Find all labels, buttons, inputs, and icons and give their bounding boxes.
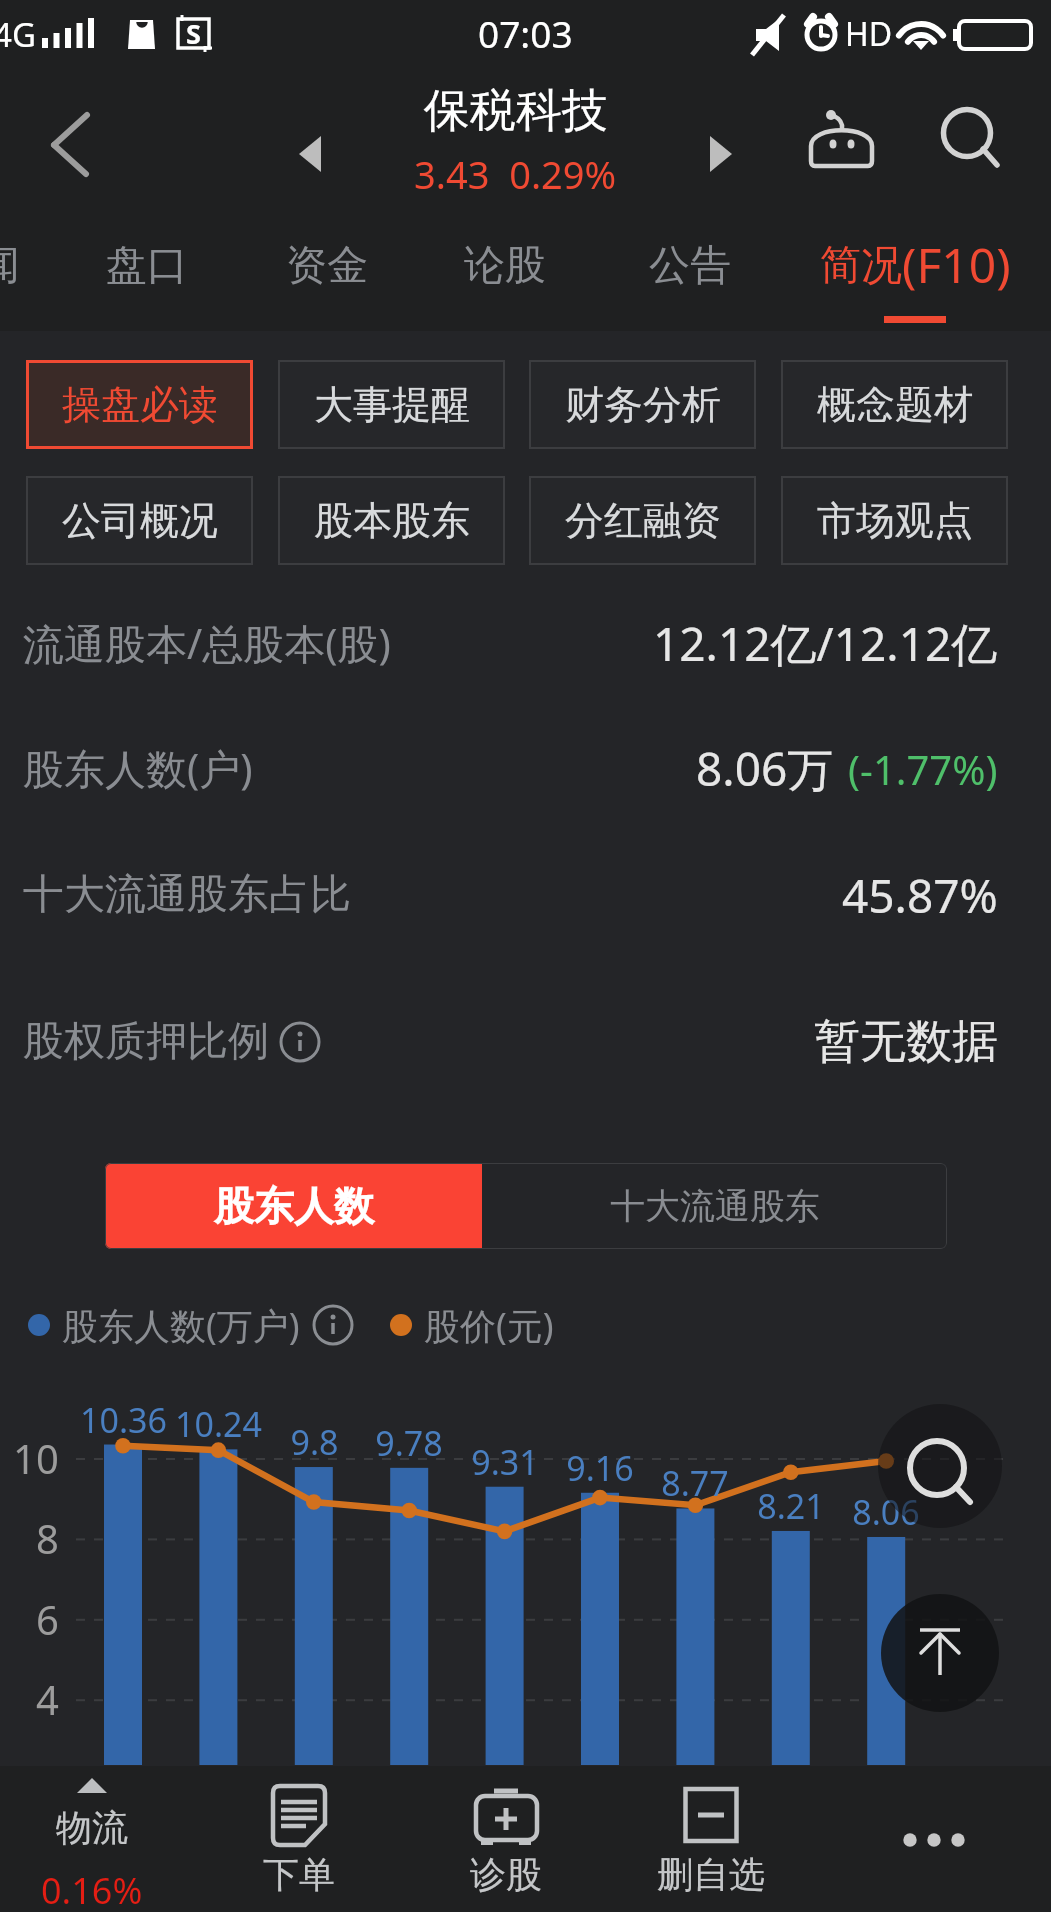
staticText: 股本股东 bbox=[314, 496, 470, 545]
staticText: 8.06 bbox=[852, 1489, 920, 1535]
staticText: 股东人数(万户) bbox=[62, 1301, 300, 1350]
button[interactable]: Next bbox=[681, 99, 761, 179]
button[interactable]: 分红融资 bbox=[529, 476, 756, 565]
button[interactable]: Search bbox=[910, 83, 1022, 195]
staticText: 操盘必读 bbox=[62, 380, 218, 429]
button[interactable]: 诊股 bbox=[426, 1766, 586, 1912]
button[interactable]: 物流 bbox=[16, 1766, 168, 1912]
staticText: 股东人数(户) bbox=[23, 740, 253, 796]
button[interactable]: More bbox=[874, 1766, 994, 1912]
staticText: 简况 bbox=[820, 240, 902, 292]
button[interactable]: 资金 bbox=[262, 208, 392, 331]
button[interactable]: 大事提醒 bbox=[278, 360, 505, 449]
staticText: 公司概况 bbox=[62, 496, 218, 545]
staticText: 6 bbox=[36, 1592, 59, 1646]
staticText: 论股 bbox=[464, 240, 546, 292]
button[interactable]: 市场观点 bbox=[781, 476, 1008, 565]
staticText: 物流 bbox=[56, 1805, 128, 1850]
staticText: 大事提醒 bbox=[314, 380, 470, 429]
staticText: 市场观点 bbox=[817, 496, 973, 545]
button[interactable]: 财务分析 bbox=[529, 360, 756, 449]
staticText: 8.06万 bbox=[696, 737, 834, 800]
staticText: 财务分析 bbox=[565, 380, 721, 429]
staticText: 8.77 bbox=[661, 1460, 729, 1506]
staticText: 9.31 bbox=[471, 1439, 539, 1485]
staticText: 股东人数 bbox=[214, 1181, 374, 1231]
staticText: 10.24 bbox=[175, 1401, 262, 1447]
staticText: (-1.77%) bbox=[848, 742, 998, 796]
button[interactable]: 盘口 bbox=[82, 208, 212, 331]
staticText: 下单 bbox=[263, 1852, 335, 1897]
staticText: 资金 bbox=[286, 240, 368, 292]
button[interactable]: 论股 bbox=[440, 208, 570, 331]
staticText: (F10) bbox=[902, 232, 1011, 297]
staticText: 闻 bbox=[0, 239, 20, 292]
staticText: 股价(元) bbox=[424, 1301, 554, 1350]
staticText: 诊股 bbox=[470, 1852, 542, 1897]
button[interactable]: Search bbox=[878, 1404, 1002, 1528]
button[interactable]: 概念题材 bbox=[781, 360, 1008, 449]
staticText: 9.16 bbox=[566, 1445, 634, 1491]
staticText: 分红融资 bbox=[565, 496, 721, 545]
staticText: 公告 bbox=[649, 240, 731, 292]
staticText: 3.43 0.29% bbox=[414, 148, 617, 200]
staticText: 8 bbox=[36, 1511, 59, 1565]
button[interactable]: 简况 bbox=[800, 208, 1030, 331]
staticText: 暂无数据 bbox=[814, 1013, 998, 1071]
staticText: HD bbox=[845, 12, 893, 56]
button[interactable]: Previous bbox=[270, 99, 350, 179]
button[interactable]: 操盘必读 bbox=[26, 360, 253, 449]
staticText: 十大流通股东占比 bbox=[23, 869, 351, 921]
staticText: 9.8 bbox=[290, 1419, 339, 1465]
button[interactable]: 股东人数 bbox=[105, 1163, 482, 1249]
button[interactable]: 十大流通股东 bbox=[482, 1163, 947, 1249]
staticText: 股权质押比例 bbox=[23, 1016, 269, 1068]
button[interactable]: Back bbox=[20, 89, 120, 189]
staticText: S bbox=[186, 15, 201, 52]
button[interactable]: 下单 bbox=[219, 1766, 379, 1912]
staticText: 4G bbox=[0, 12, 36, 57]
staticText: 删自选 bbox=[657, 1852, 765, 1897]
button[interactable]: 公司概况 bbox=[26, 476, 253, 565]
button[interactable]: 删自选 bbox=[631, 1766, 791, 1912]
staticText: 概念题材 bbox=[817, 380, 973, 429]
button[interactable]: Assistant bbox=[786, 83, 898, 195]
staticText: 0.16% bbox=[41, 1866, 143, 1912]
staticText: 10.36 bbox=[80, 1397, 167, 1443]
staticText: 保税科技 bbox=[424, 82, 608, 140]
staticText: 07:03 bbox=[478, 8, 573, 58]
staticText: 流通股本/总股本(股) bbox=[23, 615, 391, 671]
staticText: 8.21 bbox=[757, 1483, 825, 1529]
staticText: 十大流通股东 bbox=[610, 1184, 820, 1228]
button[interactable]: 股本股东 bbox=[278, 476, 505, 565]
staticText: 10 bbox=[13, 1431, 59, 1485]
button[interactable]: Scroll to top bbox=[881, 1594, 999, 1712]
button[interactable]: 公告 bbox=[625, 208, 755, 331]
staticText: 9.78 bbox=[375, 1420, 443, 1466]
staticText: 45.87% bbox=[842, 864, 998, 927]
staticText: 12.12亿/12.12亿 bbox=[653, 612, 998, 675]
staticText: 盘口 bbox=[106, 240, 188, 292]
staticText: 4 bbox=[36, 1672, 59, 1726]
